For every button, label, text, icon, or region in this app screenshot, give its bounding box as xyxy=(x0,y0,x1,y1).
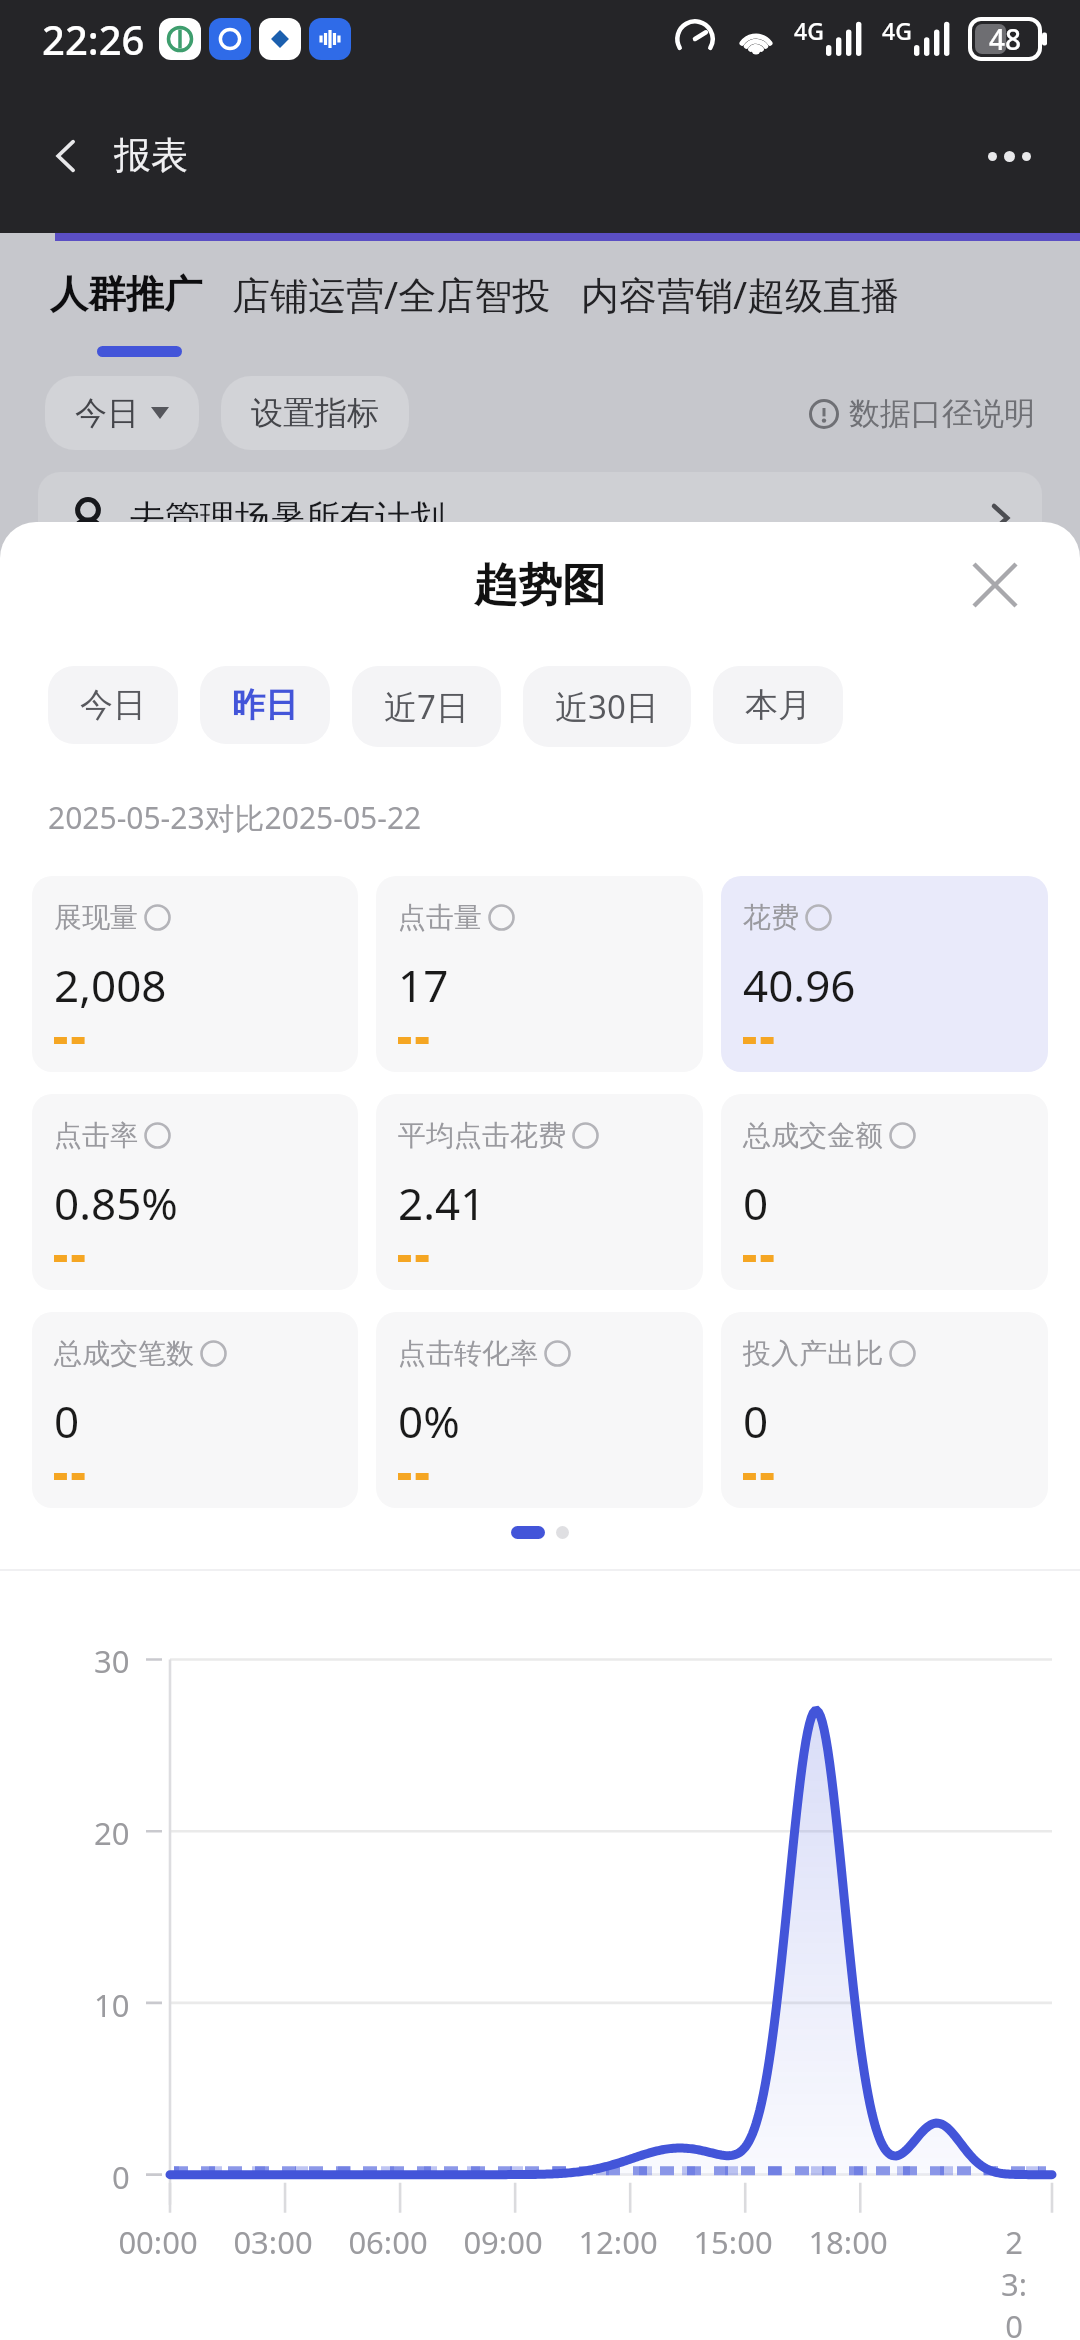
button[interactable]: 投入产出比 xyxy=(721,1312,1048,1508)
staticText: 0 xyxy=(112,2156,130,2198)
staticText: 0 xyxy=(54,1391,80,1451)
button[interactable]: 展现量 xyxy=(32,876,358,1072)
staticText: 点击量 xyxy=(398,900,482,935)
staticText: 2,008 xyxy=(54,955,167,1015)
staticText: 报表 xyxy=(114,132,188,179)
staticText: 今日 xyxy=(80,684,146,726)
staticText: 09:00 xyxy=(463,2221,543,2263)
staticText: 平均点击花费 xyxy=(398,1118,566,1153)
staticText: 23:00 xyxy=(1000,2221,1028,2340)
staticText: 18:00 xyxy=(808,2221,888,2263)
staticText: 40.96 xyxy=(743,955,856,1015)
staticText: 昨日 xyxy=(232,684,298,726)
button[interactable]: More options xyxy=(974,121,1044,191)
button[interactable]: 平均点击花费 xyxy=(376,1094,703,1290)
staticText: 近30日 xyxy=(555,684,659,729)
staticText: 4G xyxy=(882,15,912,46)
staticText: 投入产出比 xyxy=(743,1336,883,1371)
button[interactable]: 内容营销/超级直播 xyxy=(581,268,900,320)
staticText: 10 xyxy=(94,1984,130,2026)
staticText: 20 xyxy=(94,1812,130,1854)
staticText: 06:00 xyxy=(348,2221,428,2263)
staticText: 0 xyxy=(743,1391,769,1451)
staticText: 点击转化率 xyxy=(398,1336,538,1371)
button[interactable]: 今日 xyxy=(45,376,199,450)
button[interactable]: 近30日 xyxy=(523,666,691,747)
button[interactable]: 本月 xyxy=(713,666,843,744)
staticText: 数据口径说明 xyxy=(849,394,1035,433)
staticText: 0% xyxy=(398,1391,460,1451)
button[interactable]: 店铺运营/全店智投 xyxy=(232,268,551,320)
button[interactable]: 花费 xyxy=(721,876,1048,1072)
staticText: 2.41 xyxy=(398,1173,486,1233)
staticText: 48 xyxy=(989,20,1022,58)
staticText: 总成交金额 xyxy=(743,1118,883,1153)
staticText: 点击率 xyxy=(54,1118,138,1153)
button[interactable]: 人群推广 xyxy=(50,270,202,318)
staticText: 4G xyxy=(794,15,824,46)
button[interactable]: Close xyxy=(960,550,1030,620)
staticText: 今日 xyxy=(75,393,139,433)
staticText: 趋势图 xyxy=(474,558,606,613)
button[interactable]: 点击率 xyxy=(32,1094,358,1290)
staticText: 店铺运营/全店智投 xyxy=(232,268,551,320)
button[interactable]: 数据口径说明 xyxy=(809,394,1035,433)
staticText: 2025-05-23对比2025-05-22 xyxy=(48,797,422,838)
staticText: 展现量 xyxy=(54,900,138,935)
staticText: 22:26 xyxy=(42,12,145,66)
staticText: 15:00 xyxy=(693,2221,773,2263)
staticText: 去管理场暑所有计划 xyxy=(130,496,445,539)
staticText: 03:00 xyxy=(233,2221,313,2263)
staticText: 0.85% xyxy=(54,1173,178,1233)
staticText: 设置指标 xyxy=(251,393,379,433)
button[interactable]: 总成交金额 xyxy=(721,1094,1048,1290)
button[interactable]: 昨日 xyxy=(200,666,330,744)
button[interactable]: Back xyxy=(36,125,98,187)
staticText: 0 xyxy=(743,1173,769,1233)
button[interactable]: 点击量 xyxy=(376,876,703,1072)
staticText: 总成交笔数 xyxy=(54,1336,194,1371)
button[interactable]: 去管理场暑所有计划 xyxy=(38,472,1042,563)
staticText: 近7日 xyxy=(384,684,469,729)
staticText: 人群推广 xyxy=(50,270,202,318)
staticText: 00:00 xyxy=(118,2221,198,2263)
staticText: 花费 xyxy=(743,900,799,935)
button[interactable]: 近7日 xyxy=(352,666,501,747)
staticText: 17 xyxy=(398,955,449,1015)
staticText: 内容营销/超级直播 xyxy=(581,268,900,320)
button[interactable]: 总成交笔数 xyxy=(32,1312,358,1508)
staticText: 12:00 xyxy=(578,2221,658,2263)
button[interactable]: 设置指标 xyxy=(221,376,409,450)
button[interactable]: 今日 xyxy=(48,666,178,744)
staticText: 本月 xyxy=(745,684,811,726)
staticText: 30 xyxy=(94,1640,130,1682)
button[interactable]: 点击转化率 xyxy=(376,1312,703,1508)
